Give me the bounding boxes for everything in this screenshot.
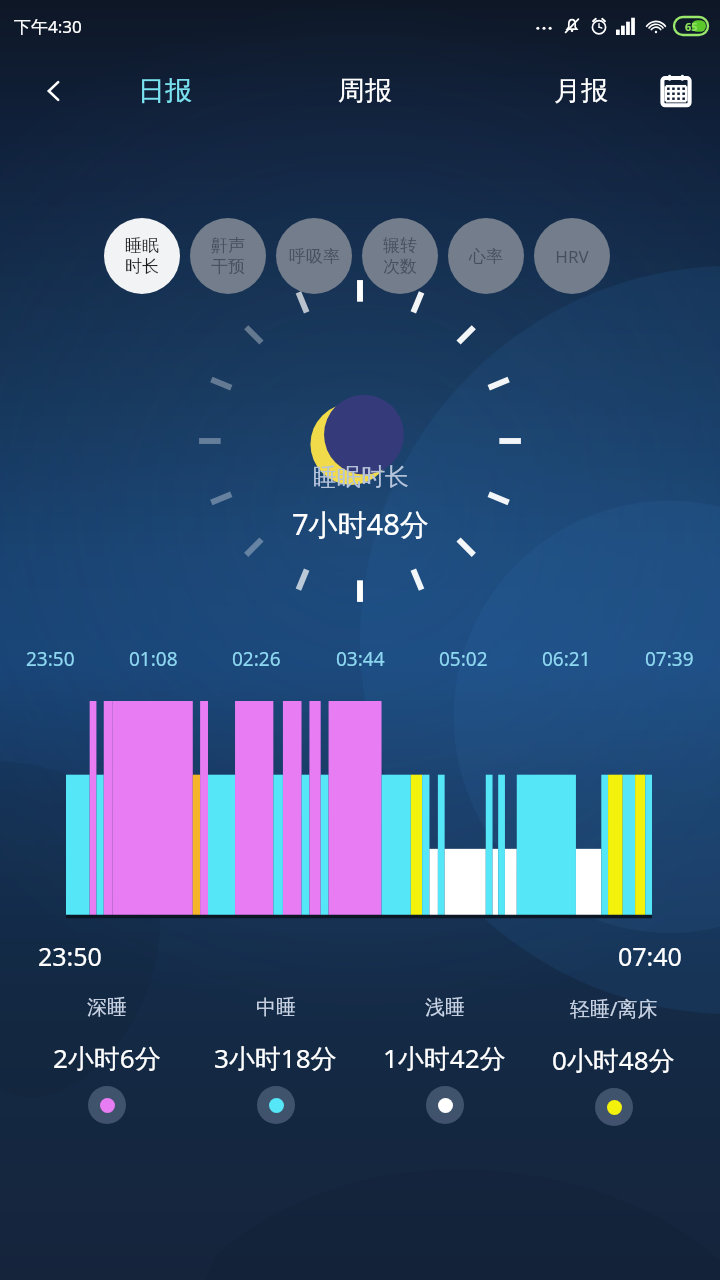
- button[interactable]: 月报: [544, 66, 618, 116]
- staticText: 23:50: [38, 939, 102, 973]
- button[interactable]: 鼾声: [190, 218, 266, 294]
- staticText: 06:21: [542, 646, 591, 672]
- staticText: 2小时6分: [53, 1040, 161, 1076]
- staticText: 3小时18分: [214, 1040, 337, 1076]
- staticText: 周报: [338, 74, 392, 108]
- button[interactable]: 轻睡/离床: [529, 995, 698, 1126]
- button[interactable]: Calendar: [654, 69, 698, 113]
- staticText: 呼吸率: [289, 246, 340, 267]
- staticText: 中睡: [256, 995, 296, 1020]
- staticText: 睡眠时长: [313, 462, 409, 492]
- staticText: 05:02: [439, 646, 488, 672]
- staticText: 下午4:30: [14, 15, 82, 38]
- staticText: 干预: [211, 256, 245, 277]
- staticText: 浅睡: [425, 995, 465, 1020]
- button[interactable]: 辗转: [362, 218, 438, 294]
- staticText: 7小时48分: [292, 504, 429, 544]
- button[interactable]: 深睡: [22, 995, 191, 1124]
- staticText: 深睡: [87, 995, 127, 1020]
- button[interactable]: Back: [34, 71, 74, 111]
- staticText: HRV: [555, 245, 589, 268]
- button[interactable]: 心率: [448, 218, 524, 294]
- button[interactable]: 睡眠: [104, 218, 180, 294]
- staticText: 01:08: [129, 646, 178, 672]
- staticText: 23:50: [26, 646, 75, 672]
- staticText: 时长: [125, 256, 159, 277]
- staticText: 睡眠: [125, 235, 159, 256]
- staticText: 日报: [138, 74, 192, 108]
- staticText: 07:40: [618, 939, 682, 973]
- staticText: 辗转: [383, 235, 417, 256]
- button[interactable]: 日报: [128, 66, 202, 116]
- staticText: 07:39: [645, 646, 694, 672]
- staticText: 0小时48分: [552, 1042, 675, 1078]
- staticText: 心率: [469, 246, 503, 267]
- button[interactable]: 周报: [328, 66, 402, 116]
- button[interactable]: 中睡: [191, 995, 360, 1124]
- staticText: 月报: [554, 74, 608, 108]
- staticText: 02:26: [232, 646, 281, 672]
- button[interactable]: HRV: [534, 218, 610, 294]
- staticText: 65: [685, 19, 698, 34]
- staticText: 03:44: [336, 646, 385, 672]
- staticText: 轻睡/离床: [570, 995, 658, 1022]
- button[interactable]: 呼吸率: [276, 218, 352, 294]
- staticText: 1小时42分: [383, 1040, 506, 1076]
- button[interactable]: 浅睡: [360, 995, 529, 1124]
- staticText: 次数: [383, 256, 417, 277]
- staticText: 鼾声: [211, 235, 245, 256]
